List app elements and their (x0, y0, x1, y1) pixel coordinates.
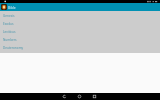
staticText: Bible (8, 5, 16, 9)
button[interactable]: App icon (1, 4, 7, 10)
button[interactable]: Numbers (0, 35, 160, 43)
staticText: Leviticus (3, 30, 16, 34)
staticText: Deuteronomy (3, 46, 24, 50)
staticText: Exodus (3, 22, 14, 26)
staticText: Numbers (3, 38, 17, 42)
button[interactable]: Leviticus (0, 27, 160, 35)
button[interactable]: Recent apps (93, 93, 96, 100)
button[interactable]: Back (63, 93, 66, 100)
staticText: Genesis (3, 14, 15, 18)
button[interactable]: Exodus (0, 19, 160, 27)
button[interactable]: Deuteronomy (0, 43, 160, 51)
button[interactable]: Genesis (0, 11, 160, 19)
button[interactable]: Home (78, 93, 81, 100)
